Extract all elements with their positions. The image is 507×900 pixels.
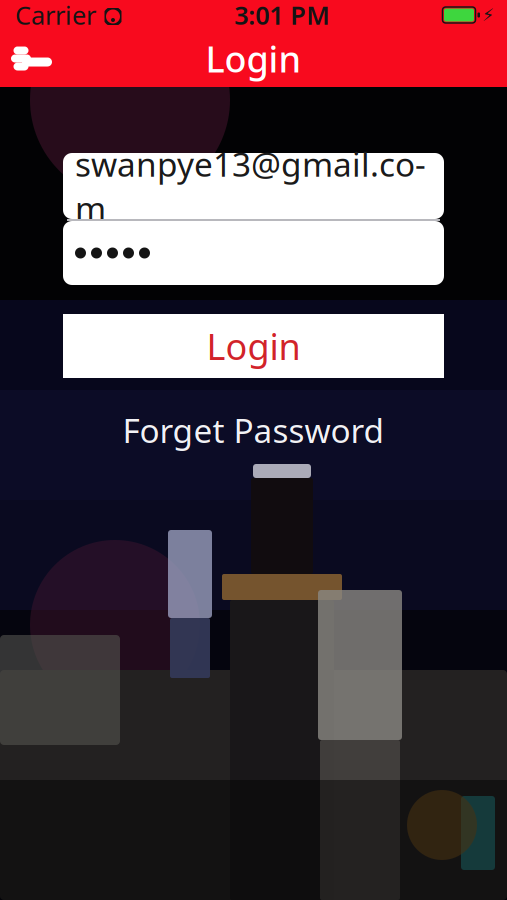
button[interactable]: Login [63, 314, 444, 378]
button[interactable]: Back [0, 30, 62, 87]
button[interactable] [63, 221, 444, 285]
staticText: Carrier [15, 0, 96, 32]
button[interactable]: Forget Password [0, 413, 507, 447]
staticText: Login [205, 35, 301, 82]
staticText: swanpye13@gmail.com [75, 142, 426, 230]
staticText: Login [206, 322, 300, 370]
staticText: ⚡︎ [482, 5, 494, 25]
staticText: Forget Password [122, 408, 384, 452]
button[interactable]: swanpye13@gmail.com [63, 153, 444, 219]
staticText: 3:01 PM [234, 0, 330, 32]
